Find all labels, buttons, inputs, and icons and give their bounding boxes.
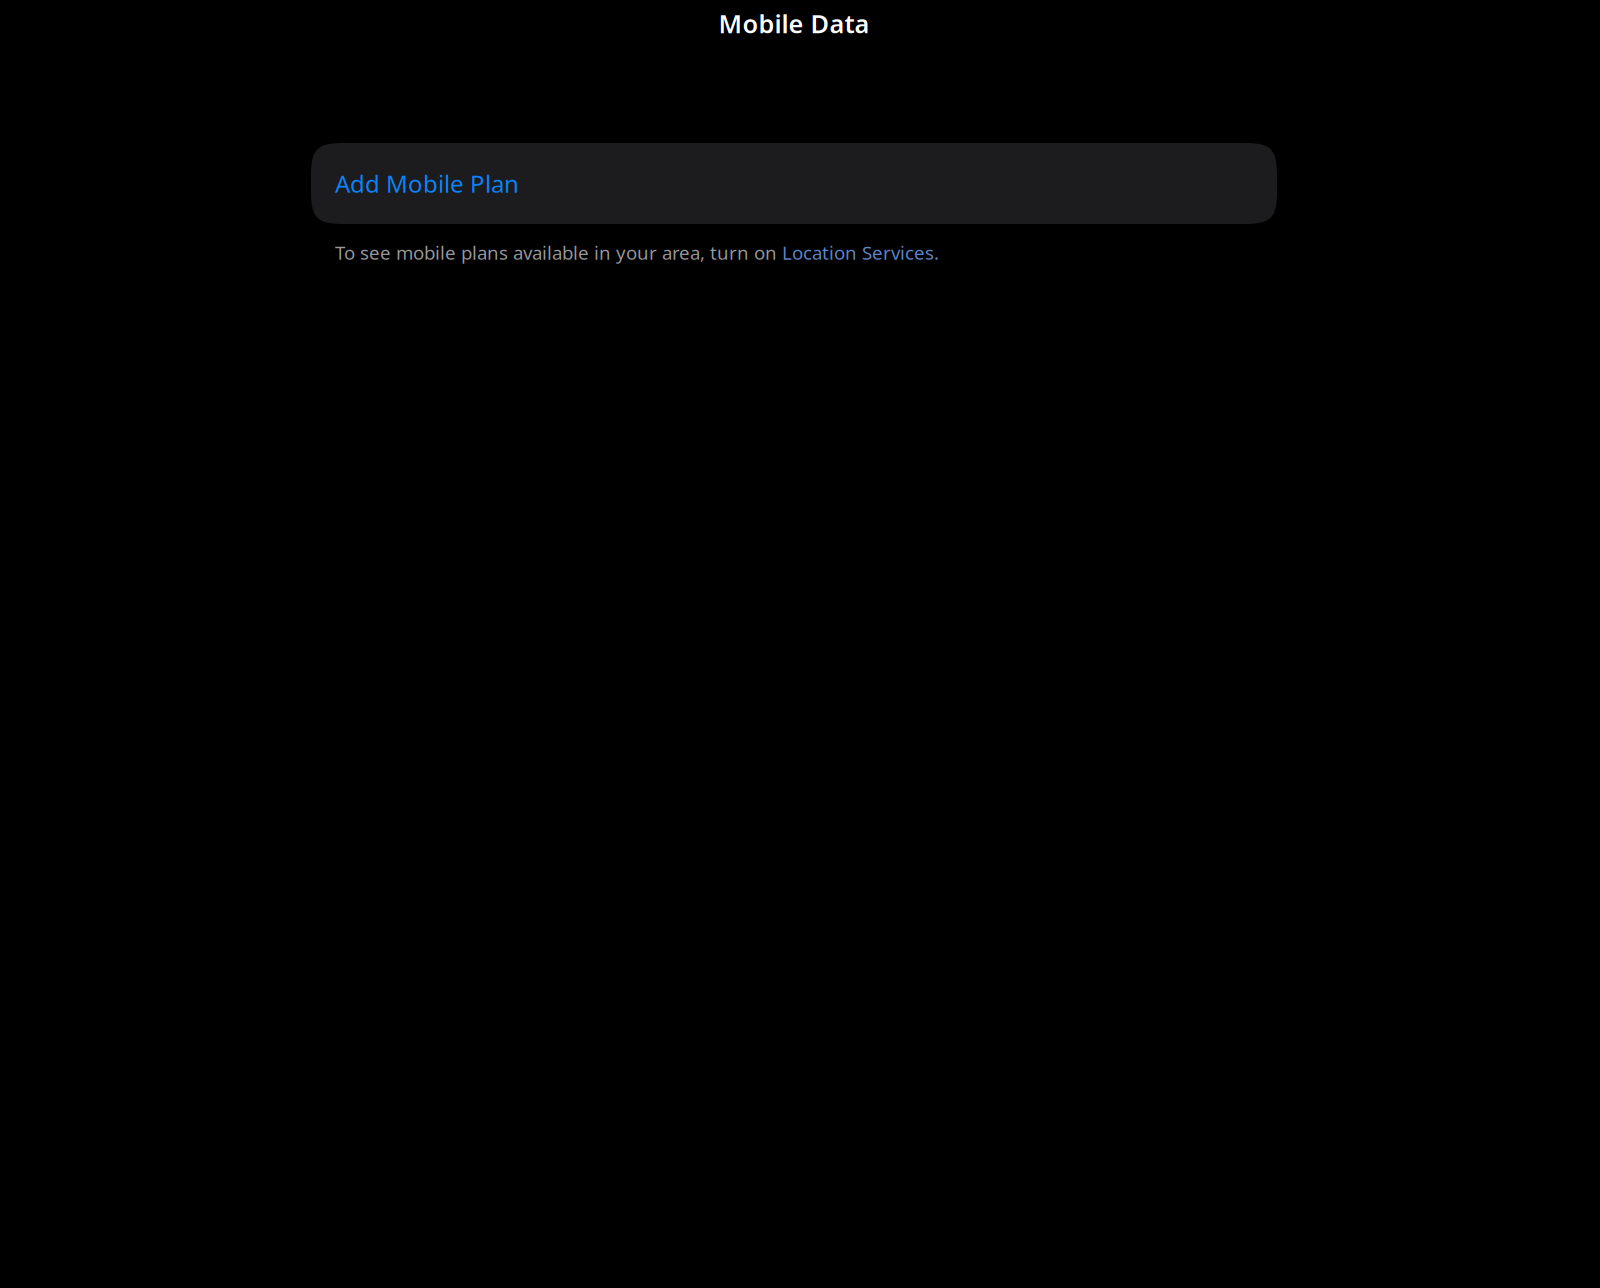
staticText: Mobile Data — [718, 7, 869, 40]
staticText: Location Services — [782, 240, 934, 265]
staticText: . — [934, 240, 939, 265]
button[interactable]: Add Mobile Plan — [311, 143, 1277, 224]
staticText: To see mobile plans available in your ar… — [335, 240, 782, 265]
button[interactable]: Location Services — [782, 240, 934, 265]
staticText: Add Mobile Plan — [335, 168, 519, 199]
